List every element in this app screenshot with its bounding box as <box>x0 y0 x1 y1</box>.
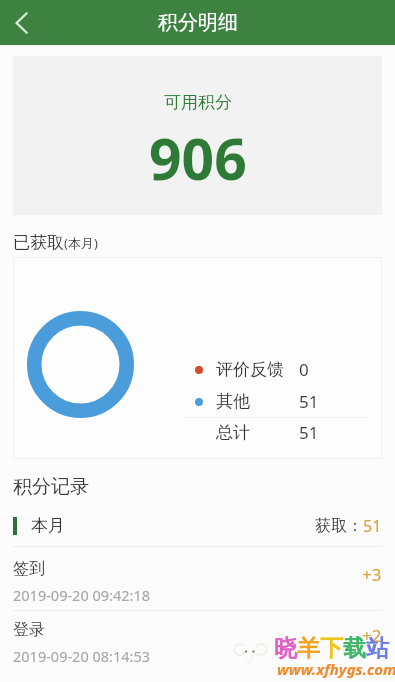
staticText: 评价反馈 <box>216 359 299 380</box>
staticText: 总计 <box>216 422 299 443</box>
staticText: 签到 <box>13 559 45 579</box>
staticText: 其他 <box>216 391 299 412</box>
staticText: www.xfhygs.com <box>277 659 395 679</box>
staticText: 51 <box>299 390 319 413</box>
button[interactable]: 签到 <box>0 550 395 613</box>
staticText: 积分明细 <box>158 10 238 35</box>
staticText: (本月) <box>64 234 98 252</box>
staticText: 51 <box>363 515 382 537</box>
staticText: 2019-09-20 08:14:53 <box>13 646 150 666</box>
staticText: 晓 <box>274 634 297 663</box>
staticText: 0 <box>299 358 309 381</box>
staticText: 站 <box>366 634 389 663</box>
staticText: 已获取 <box>13 232 64 253</box>
staticText: 登录 <box>13 620 45 640</box>
staticText: 下 <box>320 634 343 663</box>
staticText: 2019-09-20 09:42:18 <box>13 585 150 605</box>
staticText: +3 <box>362 563 382 586</box>
staticText: 羊 <box>297 634 320 663</box>
staticText: 获取： <box>315 516 363 536</box>
staticText: 本月 <box>31 515 65 536</box>
staticText: +2 <box>362 624 382 647</box>
staticText: 积分记录 <box>13 475 89 499</box>
staticText: 载 <box>343 634 366 663</box>
staticText: 906 <box>149 119 247 197</box>
button[interactable]: 登录 <box>0 611 395 674</box>
staticText: 51 <box>299 421 319 444</box>
button[interactable]: Back <box>0 0 46 45</box>
staticText: 可用积分 <box>164 92 232 113</box>
